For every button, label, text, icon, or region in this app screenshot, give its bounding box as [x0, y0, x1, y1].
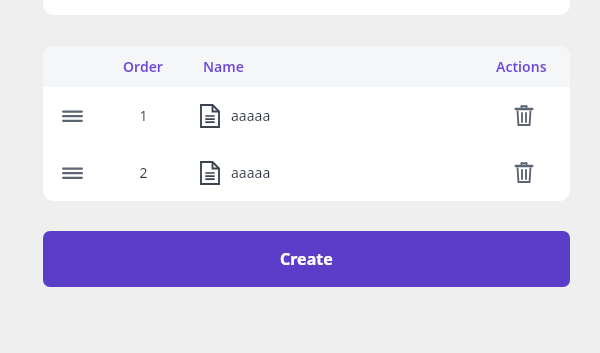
button[interactable]: Reorder — [52, 144, 92, 201]
staticText: aaaaa — [231, 106, 271, 125]
staticText: Actions — [496, 57, 547, 76]
button[interactable]: Create — [43, 231, 570, 287]
button[interactable]: Delete — [504, 87, 544, 144]
button[interactable]: Reorder — [52, 87, 92, 144]
staticText: aaaaa — [231, 163, 271, 182]
staticText: Name — [203, 57, 244, 76]
button[interactable]: Delete — [504, 144, 544, 201]
staticText: Create — [280, 248, 333, 270]
staticText: 1 — [139, 106, 148, 125]
button[interactable]: Reorder — [43, 87, 570, 144]
button[interactable]: Reorder — [43, 144, 570, 201]
staticText: 2 — [139, 163, 148, 182]
staticText: Order — [123, 57, 163, 76]
